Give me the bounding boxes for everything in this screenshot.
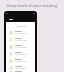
button[interactable] — [6, 57, 35, 64]
button[interactable] — [6, 50, 35, 57]
button[interactable] — [6, 29, 35, 36]
button[interactable] — [6, 43, 35, 50]
button[interactable] — [6, 71, 35, 72]
button[interactable]: App bar — [6, 13, 35, 22]
staticText: Keep track of your reading — [7, 3, 57, 8]
button[interactable] — [6, 64, 35, 71]
button[interactable] — [6, 36, 35, 43]
